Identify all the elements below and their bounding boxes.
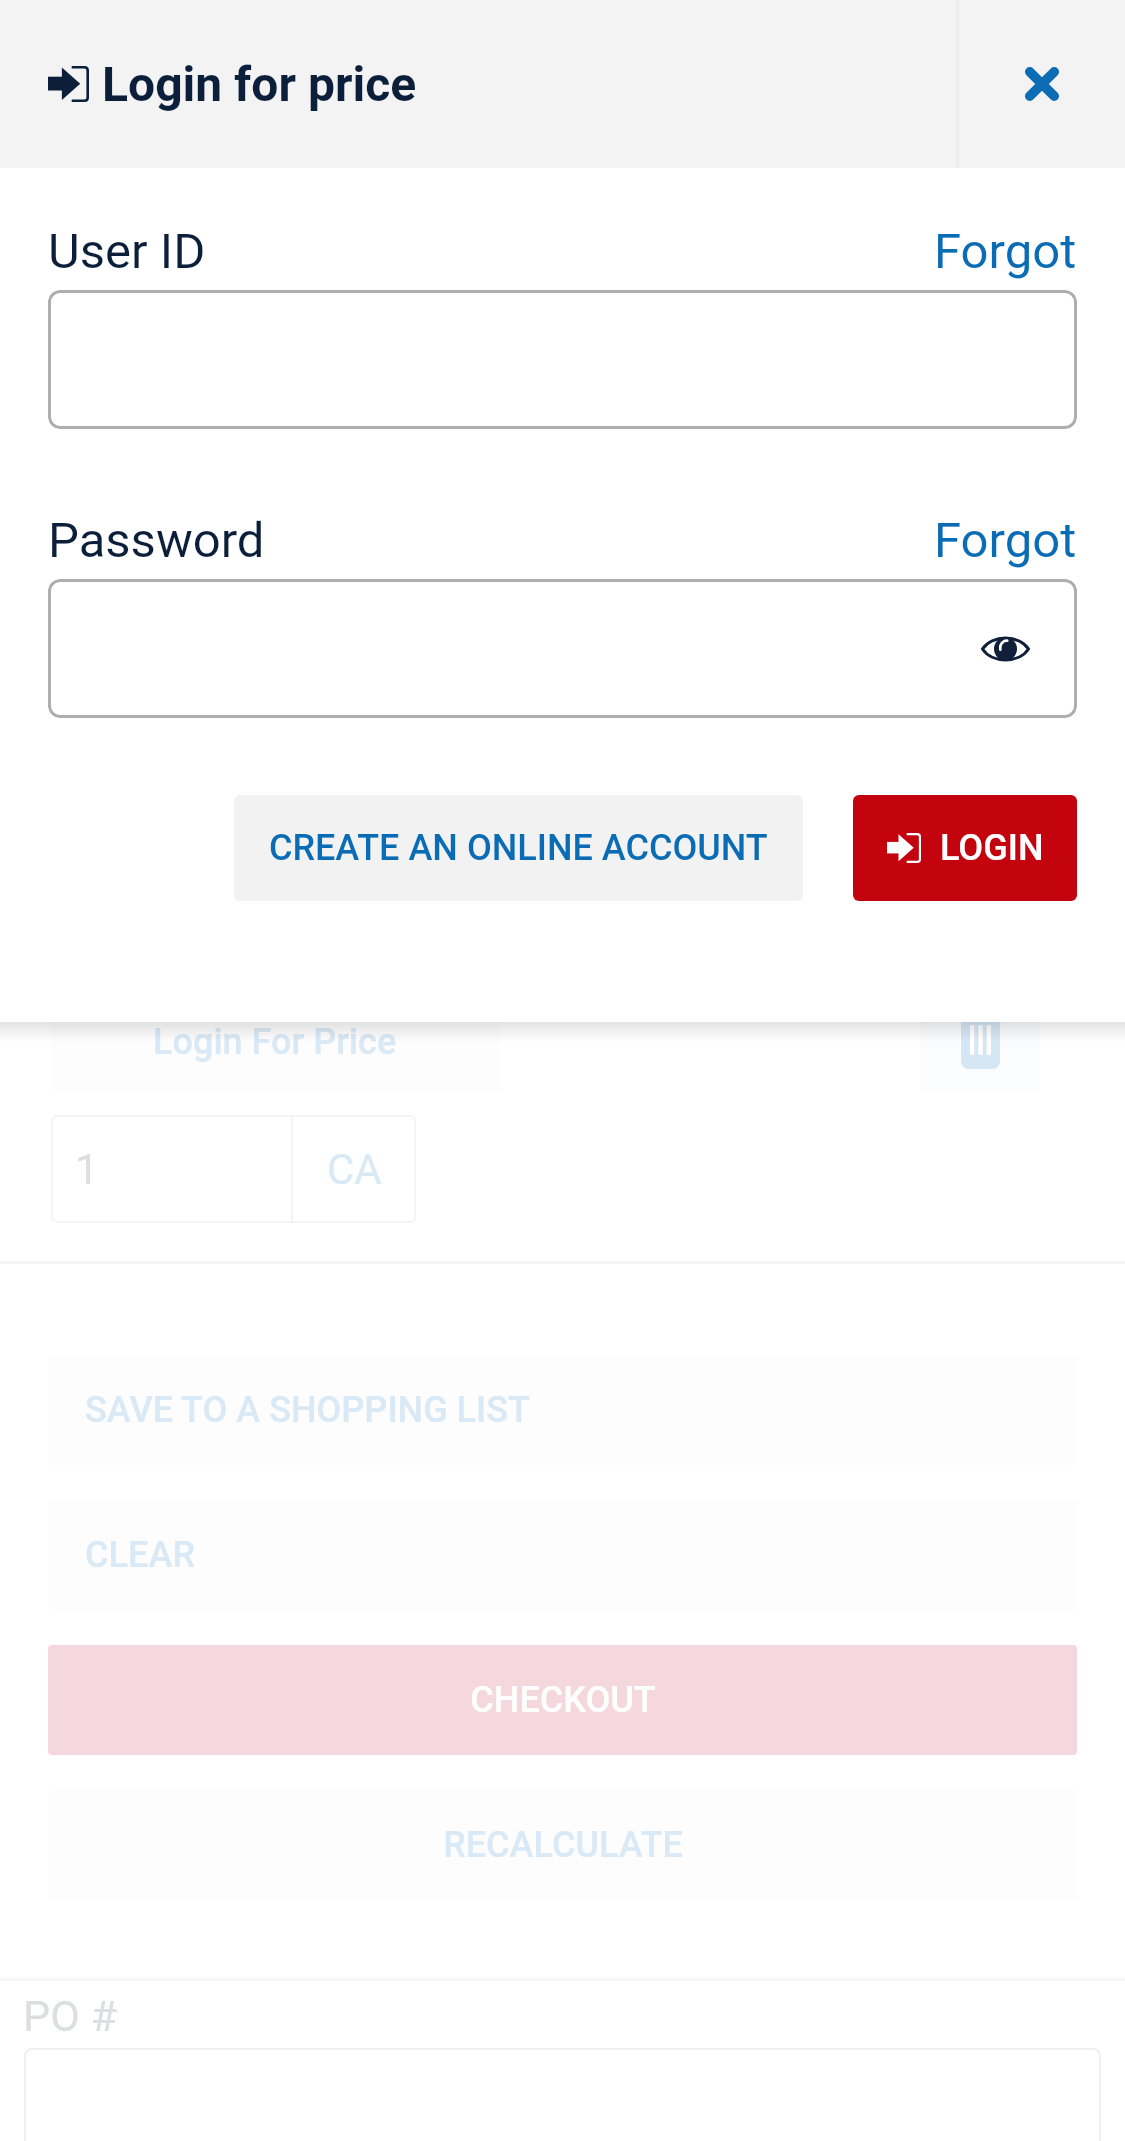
button[interactable]: CREATE AN ONLINE ACCOUNT: [234, 795, 803, 901]
staticText: 1: [75, 1145, 99, 1194]
button[interactable]: SAVE TO A SHOPPING LIST: [48, 1355, 1077, 1465]
button[interactable]: Login for price: [0, 0, 956, 168]
button[interactable]: CHECKOUT: [48, 1645, 1077, 1755]
staticText: User ID: [48, 223, 206, 280]
staticText: CA: [327, 1145, 382, 1194]
button[interactable]: [48, 290, 1077, 429]
button[interactable]: LOGIN: [853, 795, 1077, 901]
button[interactable]: Forgot: [934, 217, 1077, 286]
staticText: RECALCULATE: [443, 1824, 683, 1866]
button[interactable]: RECALCULATE: [48, 1790, 1077, 1900]
button[interactable]: Close: [959, 0, 1125, 168]
button[interactable]: Remove item: [920, 984, 1040, 1092]
staticText: SAVE TO A SHOPPING LIST: [85, 1389, 530, 1431]
button[interactable]: Forgot: [934, 506, 1077, 575]
button[interactable]: Show password: [969, 613, 1041, 685]
staticText: Login For Price: [153, 1021, 397, 1063]
staticText: Forgot: [934, 512, 1077, 569]
staticText: Password: [48, 512, 265, 569]
staticText: Login for price: [102, 56, 417, 112]
staticText: CHECKOUT: [470, 1679, 656, 1721]
staticText: PO #: [23, 1991, 117, 2041]
button[interactable]: Show password: [48, 579, 1077, 718]
staticText: CLEAR: [85, 1534, 195, 1576]
button[interactable]: CLEAR: [48, 1500, 1077, 1610]
staticText: LOGIN: [940, 827, 1044, 869]
staticText: Forgot: [934, 223, 1077, 280]
staticText: CREATE AN ONLINE ACCOUNT: [269, 827, 768, 869]
